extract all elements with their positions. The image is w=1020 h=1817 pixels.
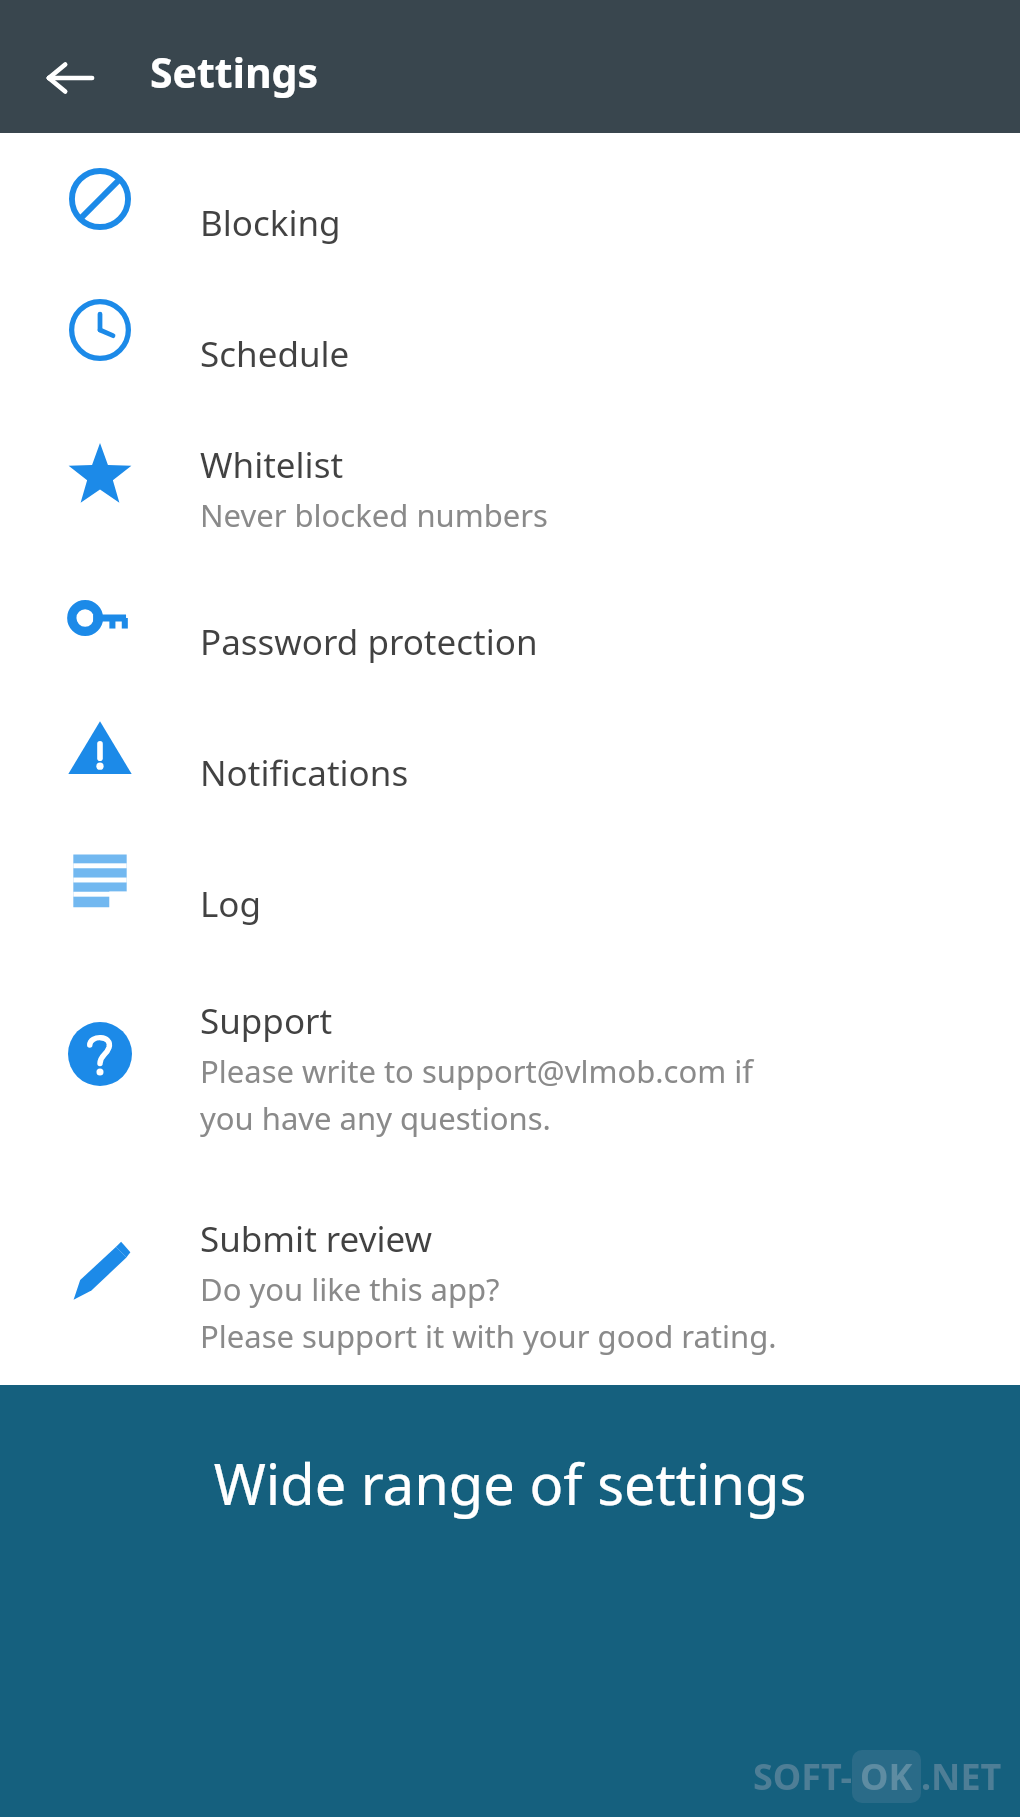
staticText: Support xyxy=(200,997,333,1045)
staticText: SOFT- xyxy=(753,1752,852,1801)
staticText: you have any questions. xyxy=(200,1097,551,1139)
staticText: Please write to support@vlmob.com if xyxy=(200,1050,753,1092)
staticText: Do you like this app? xyxy=(200,1268,500,1310)
staticText: OK xyxy=(860,1752,913,1801)
staticText: Submit review xyxy=(200,1215,433,1263)
button[interactable]: Support xyxy=(0,945,1020,1163)
staticText: Wide range of settings xyxy=(30,1445,990,1521)
staticText: Blocking xyxy=(200,199,341,247)
staticText: Never blocked numbers xyxy=(200,494,548,536)
button[interactable]: Password protection xyxy=(0,552,1020,683)
staticText: Whitelist xyxy=(200,441,344,489)
staticText: Schedule xyxy=(200,330,350,378)
button[interactable]: Blocking xyxy=(0,133,1020,264)
staticText: .NET xyxy=(921,1752,1002,1801)
button[interactable]: Notifications xyxy=(0,683,1020,814)
button[interactable]: Whitelist xyxy=(0,395,1020,552)
button[interactable]: Back xyxy=(30,38,110,118)
staticText: Log xyxy=(200,880,262,928)
button[interactable]: Log xyxy=(0,814,1020,945)
staticText: Notifications xyxy=(200,749,409,797)
staticText: Password protection xyxy=(200,618,538,666)
button[interactable]: Schedule xyxy=(0,264,1020,395)
staticText: Please support it with your good rating. xyxy=(200,1315,777,1357)
staticText: Settings xyxy=(150,44,319,100)
button[interactable]: Submit review xyxy=(0,1163,1020,1381)
